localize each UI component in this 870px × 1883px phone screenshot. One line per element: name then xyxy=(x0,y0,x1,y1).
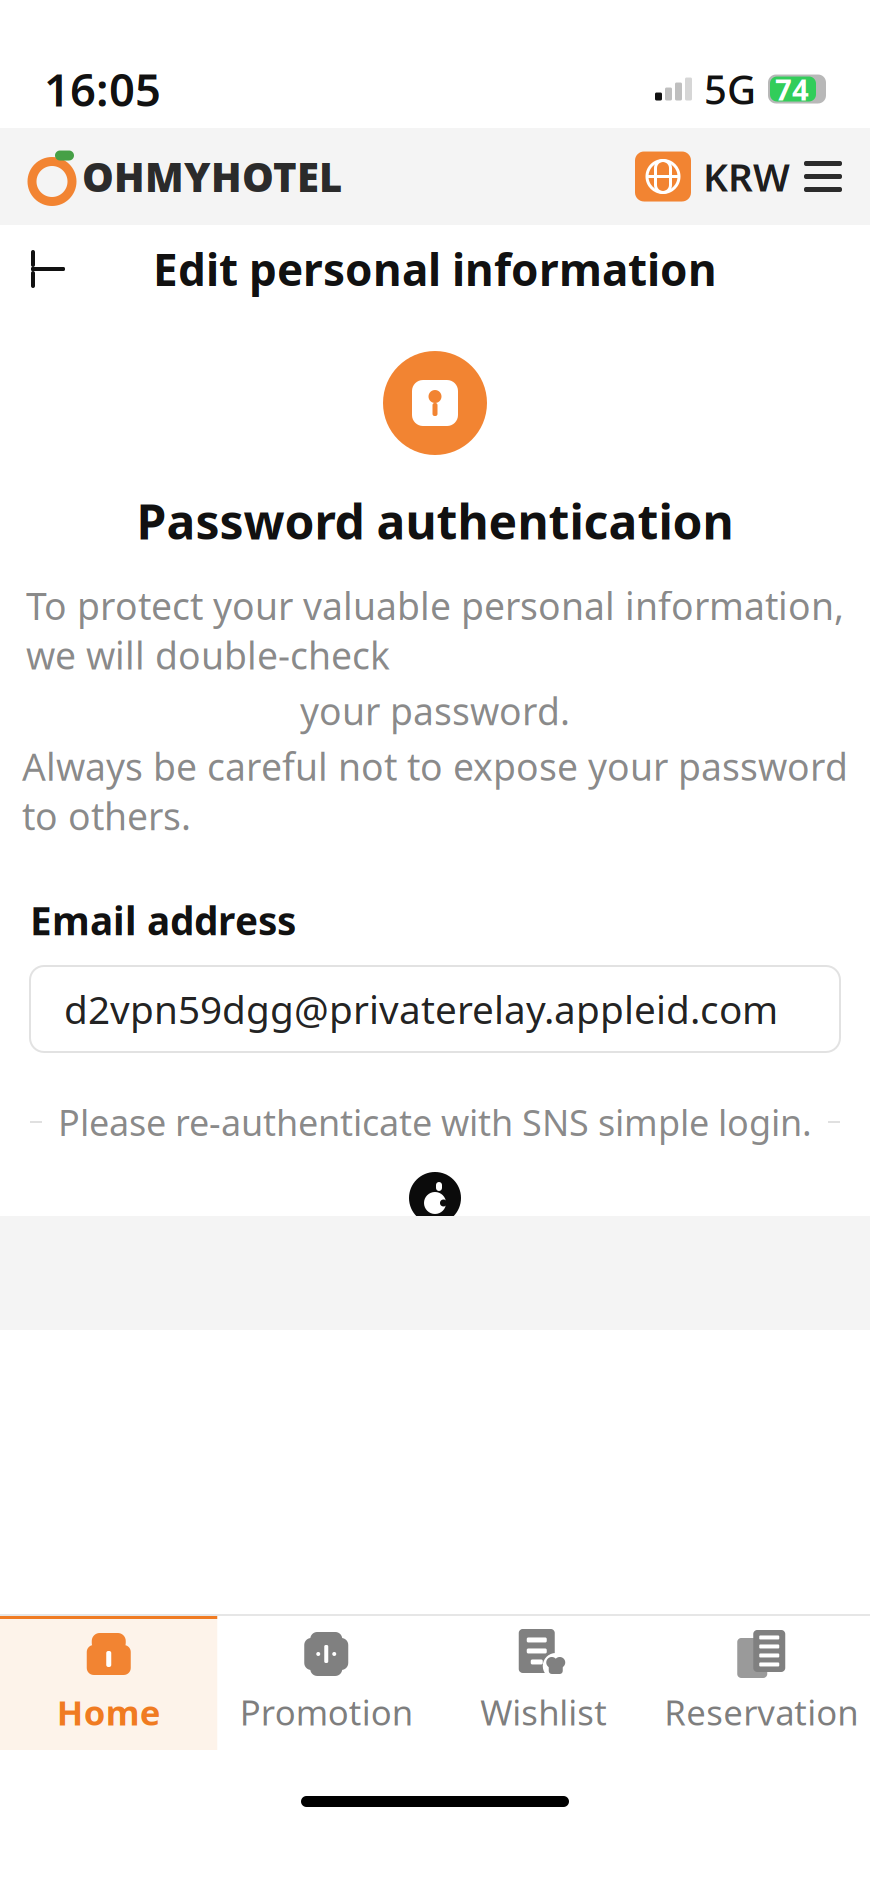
button[interactable]: d2vpn59dgg@privaterelay.appleid.com xyxy=(30,966,840,1052)
staticText: Wishlist xyxy=(480,1689,607,1735)
staticText: Edit personal information xyxy=(153,240,717,298)
staticText: OHMYHOTEL xyxy=(82,150,342,203)
button[interactable]: Promotion xyxy=(217,1614,435,1750)
staticText: d2vpn59dgg@privaterelay.appleid.com xyxy=(64,983,778,1035)
staticText: your password. xyxy=(300,686,570,735)
staticText: Home xyxy=(57,1689,161,1735)
button[interactable]: Reservation xyxy=(652,1614,870,1750)
button[interactable]: Back xyxy=(20,241,76,297)
staticText: Reservation xyxy=(664,1689,858,1735)
staticText: 74 xyxy=(775,69,809,108)
button[interactable]: Menu xyxy=(790,147,856,206)
button[interactable]: Home xyxy=(0,1614,217,1750)
staticText: Email address xyxy=(30,895,296,946)
staticText: Please re-authenticate with SNS simple l… xyxy=(58,1098,812,1146)
staticText: Always be careful not to expose your pas… xyxy=(22,741,848,841)
button[interactable]: Wishlist xyxy=(435,1614,652,1750)
staticText: To protect your valuable personal inform… xyxy=(26,581,844,680)
button[interactable]: Continue with Apple xyxy=(403,1166,467,1230)
button[interactable]: Currency KRW xyxy=(635,151,790,202)
staticText: Promotion xyxy=(240,1689,413,1735)
staticText: 5G xyxy=(704,62,756,115)
staticText: KRW xyxy=(703,151,790,202)
staticText: 16:05 xyxy=(44,59,161,119)
staticText: Password authentication xyxy=(136,489,733,553)
